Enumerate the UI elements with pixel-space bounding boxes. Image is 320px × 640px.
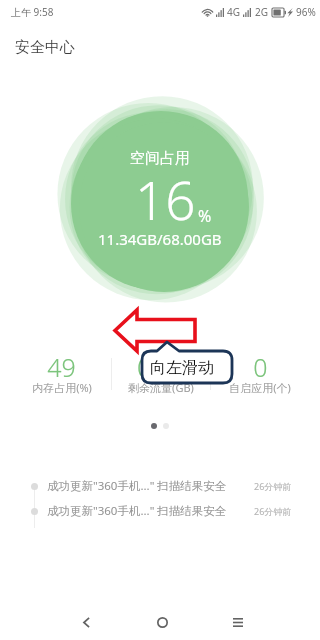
button[interactable]: 49: [12, 349, 111, 399]
staticText: 成功更新"360手机..." 扫描结果安全: [47, 478, 227, 494]
staticText: 自启应用(个): [229, 380, 291, 395]
button[interactable]: 0.00: [112, 349, 210, 399]
staticText: 0.00: [137, 350, 186, 384]
staticText: 4G: [227, 5, 240, 19]
staticText: 49: [47, 350, 76, 384]
staticText: 2G: [255, 5, 268, 19]
staticText: 向左滑动: [150, 358, 214, 378]
staticText: 剩余流量(GB): [128, 380, 194, 395]
button[interactable]: Back: [48, 604, 124, 640]
button[interactable]: 0: [211, 349, 309, 399]
button[interactable]: 成功更新"360手机..." 扫描结果安全: [0, 476, 320, 496]
staticText: 26分钟前: [254, 505, 292, 517]
staticText: 0: [253, 350, 268, 384]
staticText: 安全中心: [15, 38, 75, 57]
button[interactable]: 成功更新"360手机..." 扫描结果安全: [0, 501, 320, 521]
button[interactable]: Home: [124, 604, 200, 640]
button[interactable]: 向左滑动: [142, 351, 232, 383]
staticText: 11.34GB/68.00GB: [98, 229, 222, 249]
staticText: 内存占用(%): [32, 380, 92, 395]
staticText: 上午 9:58: [11, 5, 54, 19]
staticText: 成功更新"360手机..." 扫描结果安全: [47, 503, 227, 519]
staticText: 16: [135, 163, 196, 235]
staticText: %: [198, 205, 212, 227]
staticText: 26分钟前: [254, 480, 292, 492]
staticText: 96%: [296, 5, 316, 19]
staticText: 空间占用: [130, 149, 190, 168]
button[interactable]: Menu: [200, 604, 276, 640]
